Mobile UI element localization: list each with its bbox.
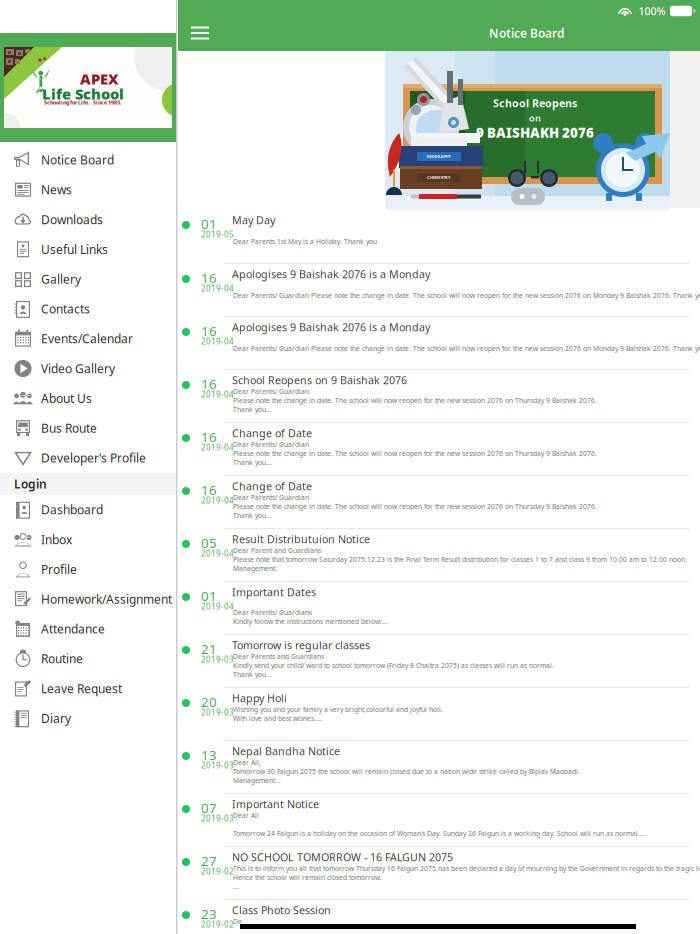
- button[interactable]: 07: [176, 794, 700, 847]
- staticText: 01: [201, 215, 217, 233]
- staticText: Apologises 9 Baishak 2076 is a Monday: [232, 267, 430, 281]
- staticText: Thank you...: [233, 511, 272, 520]
- staticText: Thank you...: [233, 670, 272, 679]
- staticText: 07: [201, 799, 217, 817]
- staticText: GEOGRAPHY: [426, 154, 451, 159]
- staticText: 13: [201, 746, 217, 764]
- button[interactable]: 05: [176, 529, 700, 582]
- staticText: 05: [201, 534, 217, 552]
- staticText: Dear Parents/ Guardian: [233, 493, 309, 502]
- staticText: 9 BAISHAKH 2076: [476, 124, 594, 141]
- staticText: Thank you...: [233, 405, 272, 414]
- staticText: News: [41, 182, 72, 198]
- button[interactable]: Homework/Assignment: [0, 584, 176, 614]
- staticText: Inbox: [41, 531, 72, 547]
- staticText: 2019-04: [201, 548, 234, 559]
- button[interactable]: 16: [176, 370, 700, 423]
- staticText: 2019-04: [201, 601, 234, 612]
- staticText: 2019-03: [201, 813, 234, 824]
- staticText: 2019-04: [201, 495, 234, 506]
- button[interactable]: 01: [176, 582, 700, 635]
- staticText: 2019-02: [201, 919, 234, 930]
- staticText: Thank you...: [233, 458, 272, 467]
- button[interactable]: News: [0, 175, 176, 205]
- staticText: 2019-02: [201, 866, 234, 877]
- staticText: Developer's Profile: [41, 450, 146, 466]
- staticText: 2019-04: [201, 336, 234, 347]
- staticText: 01: [201, 587, 217, 605]
- button[interactable]: About Us: [0, 383, 176, 413]
- staticText: 27: [201, 852, 217, 870]
- button[interactable]: 23: [176, 900, 700, 934]
- staticText: Please note the change in date. The scho…: [233, 396, 597, 405]
- staticText: APEX: [80, 69, 119, 88]
- staticText: NO SCHOOL TOMORROW - 16 FALGUN 2075: [232, 850, 453, 864]
- staticText: Useful Links: [41, 241, 108, 257]
- button[interactable]: 16: [176, 423, 700, 476]
- staticText: 2019-04: [201, 283, 234, 294]
- button[interactable]: 27: [176, 847, 700, 900]
- staticText: Please note the change in date. The scho…: [233, 502, 597, 511]
- button[interactable]: Events/Calendar: [0, 324, 176, 354]
- staticText: on: [529, 112, 541, 124]
- button[interactable]: Contacts: [0, 294, 176, 324]
- staticText: Tomorrow is regular classes: [232, 638, 370, 652]
- staticText: Schooling for Life. Since 1983.: [44, 99, 121, 106]
- button[interactable]: 13: [176, 741, 700, 794]
- button[interactable]: Downloads: [0, 205, 176, 234]
- button[interactable]: 16: [176, 476, 700, 529]
- button[interactable]: Notice Board: [0, 145, 176, 175]
- staticText: Dear Parents/ Guardian: [233, 387, 309, 396]
- button[interactable]: Bus Route: [0, 413, 176, 443]
- staticText: Leave Request: [41, 680, 122, 696]
- staticText: Homework/Assignment: [41, 591, 172, 607]
- button[interactable]: 16: [176, 317, 700, 370]
- staticText: 2019-03: [201, 707, 234, 718]
- staticText: 20: [201, 693, 217, 711]
- staticText: Notice Board: [489, 25, 565, 41]
- button[interactable]: 20: [176, 688, 700, 741]
- staticText: Dear Parents/ Guardian: [233, 440, 309, 449]
- staticText: 21: [201, 640, 217, 658]
- staticText: Downloads: [41, 211, 103, 227]
- button[interactable]: Useful Links: [0, 234, 176, 264]
- staticText: May Day: [232, 213, 275, 227]
- button[interactable]: Video Gallery: [0, 354, 176, 383]
- staticText: Life School: [42, 84, 124, 103]
- button[interactable]: 16: [176, 264, 700, 317]
- staticText: Login: [14, 476, 47, 492]
- staticText: Happy Holi: [232, 691, 287, 705]
- button[interactable]: Diary: [0, 703, 176, 733]
- button[interactable]: 01: [176, 210, 700, 264]
- staticText: Wishing you and your family a very brigh…: [233, 705, 443, 714]
- staticText: Dashboard: [41, 502, 103, 518]
- staticText: 2019-05: [201, 229, 234, 240]
- button[interactable]: Gallery: [0, 264, 176, 294]
- button[interactable]: 21: [176, 635, 700, 688]
- staticText: 2019-03: [201, 760, 234, 771]
- staticText: Please note the change in date. The scho…: [233, 449, 597, 458]
- staticText: 2019-04: [201, 442, 234, 453]
- staticText: 16: [201, 375, 217, 393]
- staticText: Important Notice: [232, 797, 319, 811]
- button[interactable]: Attendance: [0, 614, 176, 644]
- staticText: Result Distributuion Notice: [232, 532, 370, 546]
- button[interactable]: Open menu: [180, 16, 220, 50]
- staticText: Dear All: [233, 811, 259, 820]
- staticText: Tomorrow 24 Falgun is a holiday on the o…: [233, 829, 646, 838]
- button[interactable]: Inbox: [0, 525, 176, 554]
- button[interactable]: Developer's Profile: [0, 443, 176, 473]
- staticText: 23: [201, 905, 217, 923]
- staticText: Video Gallery: [41, 360, 115, 376]
- staticText: With love and best wishes....: [233, 714, 322, 723]
- button[interactable]: Profile: [0, 554, 176, 584]
- button[interactable]: Dashboard: [0, 495, 176, 525]
- staticText: Please note that tomorrow Saturday 2075.…: [233, 555, 687, 564]
- staticText: Dear Parents/ Guardians: [233, 608, 312, 617]
- staticText: Change of Date: [232, 426, 312, 440]
- button[interactable]: Routine: [0, 644, 176, 674]
- staticText: About Us: [41, 390, 92, 406]
- staticText: Hence the school will remain closed tomo…: [233, 873, 382, 882]
- staticText: Routine: [41, 651, 83, 667]
- button[interactable]: Leave Request: [0, 674, 176, 703]
